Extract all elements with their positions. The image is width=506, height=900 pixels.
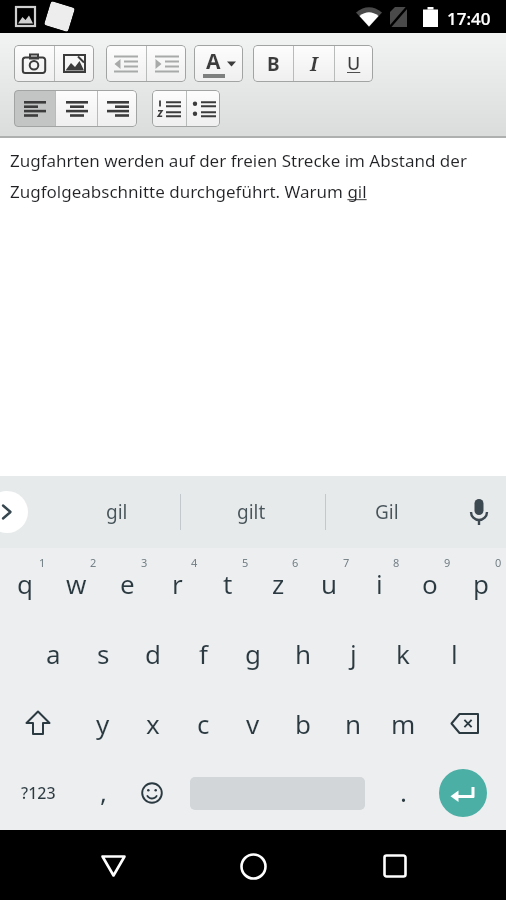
staticText: 1 [39,555,46,570]
button[interactable] [0,491,28,533]
staticText: ?123 [21,782,56,804]
button[interactable] [14,90,55,127]
button[interactable]: d [129,628,177,678]
button[interactable]: s [79,628,127,678]
button[interactable]: , [83,769,123,813]
staticText: n [345,706,362,741]
staticText: z [272,566,285,601]
button[interactable]: I [294,45,334,82]
button[interactable]: l [430,628,478,678]
button[interactable]: c [179,698,227,748]
button[interactable] [439,769,487,817]
staticText: 6 [292,555,299,570]
button[interactable] [152,90,186,127]
button[interactable]: t [204,558,252,608]
button[interactable] [187,90,220,127]
button[interactable]: b [279,698,327,748]
staticText: p [473,566,489,601]
staticText: t [223,566,233,601]
staticText: 17:40 [447,7,491,30]
button[interactable] [55,45,94,82]
button[interactable] [14,45,54,82]
button[interactable]: e [103,558,151,608]
staticText: gil [106,499,128,525]
staticText: gilt [237,499,266,525]
staticText: 3 [141,555,148,570]
staticText: b [295,706,311,741]
staticText: m [391,706,416,741]
button[interactable]: q [1,558,49,608]
button[interactable] [469,498,489,526]
button[interactable]: n [329,698,377,748]
staticText: g [245,636,261,671]
staticText: x [146,706,160,741]
staticText: 9 [444,555,451,570]
button[interactable] [56,90,97,127]
button[interactable]: r [153,558,201,608]
button[interactable]: g [229,628,277,678]
staticText: w [66,566,87,601]
staticText: 0 [495,555,502,570]
staticText: q [17,566,33,601]
staticText: l [451,636,458,671]
button[interactable]: i [355,558,403,608]
staticText: j [350,636,357,671]
staticText: i [376,566,383,601]
button[interactable] [106,45,146,82]
staticText: d [145,636,161,671]
staticText: c [197,706,210,741]
button[interactable]: v [229,698,277,748]
button[interactable]: m [379,698,427,748]
button[interactable]: j [329,628,377,678]
button[interactable]: gil [72,494,162,530]
staticText: u [321,566,338,601]
staticText: U [347,51,361,76]
staticText: o [422,566,438,601]
button[interactable]: z [254,558,302,608]
staticText: v [246,706,260,741]
button[interactable]: w [52,558,100,608]
button[interactable]: a [29,628,77,678]
button[interactable]: gilt [206,494,296,530]
button[interactable]: o [406,558,454,608]
staticText: A [206,47,221,76]
button[interactable] [130,771,174,815]
staticText: r [172,566,183,601]
staticText: f [199,636,208,671]
button[interactable]: U [335,45,373,82]
button[interactable]: . [383,769,423,813]
staticText: k [396,636,410,671]
button[interactable] [147,45,186,82]
staticText: 5 [242,555,249,570]
button[interactable]: A [194,45,243,82]
button[interactable] [439,698,491,748]
button[interactable] [12,698,64,748]
staticText: . [400,774,407,809]
button[interactable]: h [279,628,327,678]
button[interactable]: x [129,698,177,748]
staticText: 2 [90,555,97,570]
staticText: 4 [191,555,198,570]
button[interactable]: k [379,628,427,678]
button[interactable]: f [179,628,227,678]
button[interactable]: B [253,45,293,82]
button[interactable] [98,90,137,127]
staticText: 8 [393,555,400,570]
staticText: s [97,636,110,671]
button[interactable]: p [457,558,505,608]
staticText: Gil [375,499,399,525]
button[interactable] [226,839,280,893]
staticText: , [100,774,107,809]
button[interactable]: ?123 [8,771,68,815]
button[interactable]: u [305,558,353,608]
staticText: y [96,706,110,741]
button[interactable]: y [79,698,127,748]
button[interactable]: Gil [342,494,432,530]
staticText: Zugfahrten werden auf der freien Strecke… [10,149,502,203]
button[interactable] [368,839,422,893]
staticText: 7 [343,555,350,570]
button[interactable] [86,839,140,893]
staticText: e [120,566,135,601]
staticText: B [267,51,280,77]
